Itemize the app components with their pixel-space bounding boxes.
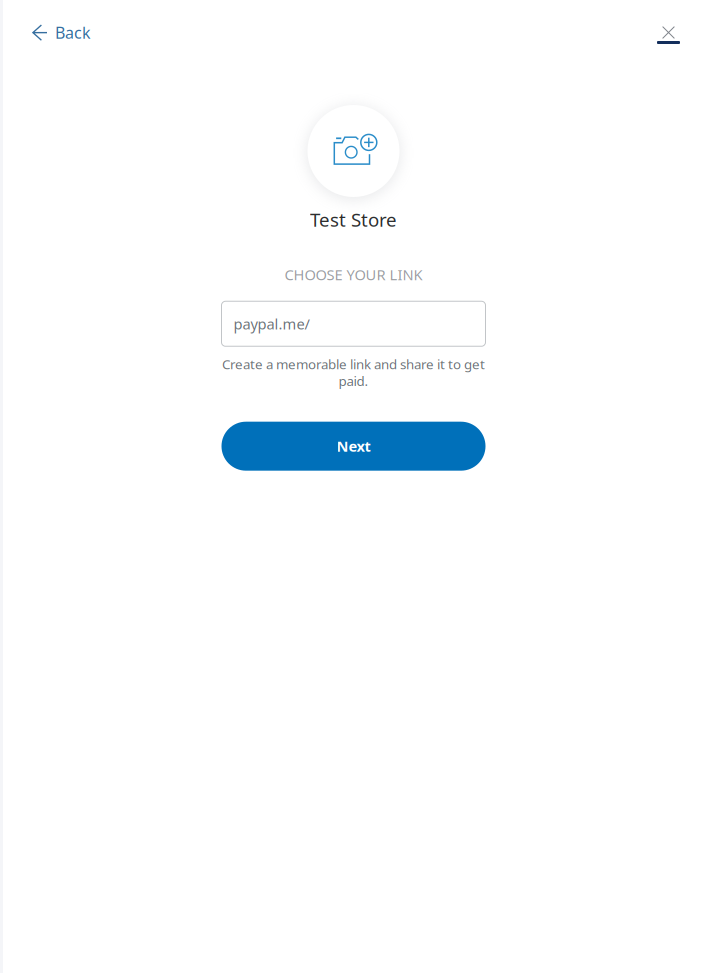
button[interactable]: paypal.me/	[221, 301, 485, 346]
button[interactable]: Back	[5, 0, 105, 52]
staticText: CHOOSE YOUR LINK	[284, 265, 422, 284]
button[interactable]: Next	[221, 422, 485, 471]
staticText: Back	[55, 22, 91, 43]
staticText: Next	[336, 436, 370, 456]
staticText: paid.	[338, 372, 368, 390]
staticText: Create a memorable link and share it to …	[222, 355, 485, 373]
button[interactable]: Close	[657, 0, 702, 53]
staticText: paypal.me/	[233, 314, 309, 333]
staticText: Test Store	[310, 207, 397, 232]
